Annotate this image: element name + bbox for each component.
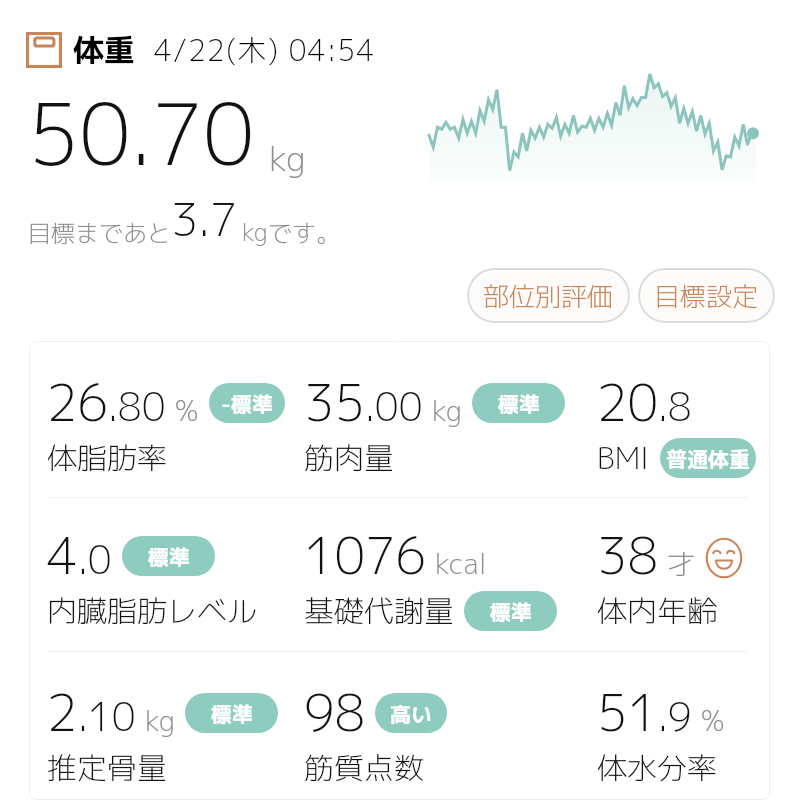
button[interactable]: 標準 <box>122 536 215 576</box>
staticText: 1076 <box>304 520 426 590</box>
staticText: 標準 <box>490 597 532 626</box>
staticText: .80 <box>108 379 166 433</box>
button[interactable]: 1076 <box>304 520 597 632</box>
button[interactable]: 38 <box>597 520 757 632</box>
button[interactable]: 51 <box>597 677 757 789</box>
button[interactable]: 4 <box>47 520 304 632</box>
staticText: 標準 <box>211 699 253 728</box>
staticText: 筋肉量 <box>304 437 394 479</box>
button[interactable]: 2 <box>47 677 304 789</box>
button[interactable]: 部位別評価 <box>467 268 630 323</box>
button[interactable]: 20 <box>597 367 757 479</box>
staticText: 目標まであと <box>27 216 171 249</box>
staticText: 98 <box>304 677 365 747</box>
button[interactable]: 98 <box>304 677 597 789</box>
staticText: kg <box>432 391 462 430</box>
staticText: 26 <box>47 367 108 437</box>
staticText: 普通体重 <box>666 444 750 473</box>
staticText: 38 <box>597 520 658 590</box>
button[interactable]: -標準 <box>209 383 285 423</box>
button[interactable]: 35 <box>304 367 597 479</box>
staticText: 2 <box>47 677 78 747</box>
staticText: 高い <box>390 699 432 728</box>
staticText: 部位別評価 <box>483 278 614 314</box>
staticText: .10 <box>78 689 136 743</box>
staticText: kcal <box>435 544 487 583</box>
staticText: 3.7 <box>171 188 238 251</box>
staticText: 体内年齢 <box>597 590 717 632</box>
other: Weight <box>26 32 62 68</box>
staticText: .00 <box>365 379 423 433</box>
staticText: .0 <box>78 532 112 586</box>
staticText: -標準 <box>221 389 273 418</box>
staticText: 目標設定 <box>654 278 759 314</box>
button[interactable]: 標準 <box>464 591 557 631</box>
staticText: 標準 <box>148 542 190 571</box>
staticText: 内臓脂肪レベル <box>47 590 257 632</box>
staticText: 才 <box>667 544 696 583</box>
staticText: .8 <box>658 379 692 433</box>
staticText: 20 <box>597 367 658 437</box>
staticText: .9 <box>658 689 692 743</box>
staticText: 推定骨量 <box>47 747 167 789</box>
button[interactable]: 高い <box>375 693 447 733</box>
staticText: % <box>701 701 725 740</box>
button[interactable]: 標準 <box>472 383 565 423</box>
staticText: 4/22(木) 04:54 <box>154 30 376 70</box>
staticText: kg <box>145 701 175 740</box>
staticText: 35 <box>304 367 365 437</box>
staticText: 体水分率 <box>597 747 717 789</box>
staticText: 標準 <box>498 389 540 418</box>
staticText: 50.70 <box>28 75 255 192</box>
staticText: BMI <box>597 437 650 479</box>
staticText: kg <box>242 215 268 248</box>
staticText: 基礎代謝量 <box>304 590 454 632</box>
button[interactable]: 標準 <box>185 693 278 733</box>
button[interactable]: 目標設定 <box>638 268 775 323</box>
staticText: です。 <box>268 216 340 249</box>
staticText: kg <box>269 134 306 181</box>
button[interactable]: 普通体重 <box>660 438 756 478</box>
staticText: 4 <box>47 520 78 590</box>
other: Body age rating <box>703 537 745 579</box>
button[interactable]: 26 <box>47 367 304 479</box>
staticText: % <box>175 391 199 430</box>
staticText: 体脂肪率 <box>47 437 167 479</box>
staticText: 体重 <box>73 28 135 71</box>
staticText: 51 <box>597 677 658 747</box>
staticText: 筋質点数 <box>304 747 424 789</box>
